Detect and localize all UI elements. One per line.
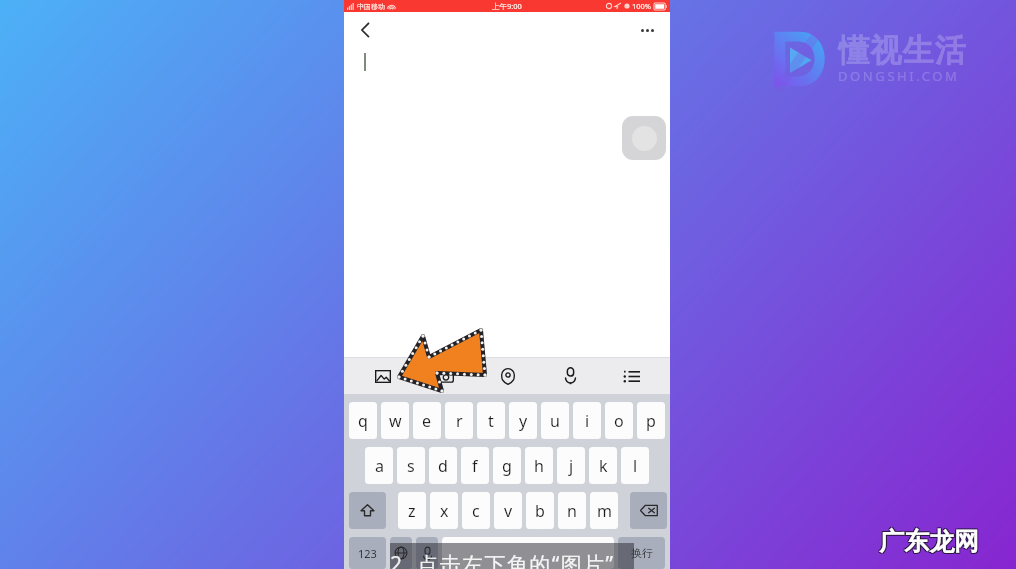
staticText: f — [472, 455, 478, 477]
button[interactable]: j — [557, 447, 585, 484]
staticText: u — [550, 410, 560, 432]
staticText: l — [633, 455, 638, 477]
button[interactable]: v — [494, 492, 522, 529]
staticText: 上午9:00 — [492, 1, 522, 11]
staticText: a — [375, 455, 384, 477]
staticText: v — [504, 500, 513, 522]
button[interactable]: p — [637, 402, 665, 439]
button[interactable]: Back — [344, 12, 382, 48]
button[interactable]: 123 — [349, 537, 386, 569]
button[interactable]: i — [573, 402, 601, 439]
staticText: b — [535, 500, 545, 522]
staticText: o — [614, 410, 624, 432]
button[interactable]: 换行 — [618, 537, 665, 569]
staticText: 广东龙网 — [879, 525, 979, 556]
button[interactable]: Shift — [349, 492, 386, 529]
button[interactable]: t — [477, 402, 505, 439]
staticText: y — [519, 410, 528, 432]
button[interactable]: Dictation — [416, 537, 438, 569]
button[interactable]: x — [430, 492, 458, 529]
staticText: w — [389, 410, 402, 432]
staticText: e — [422, 410, 432, 432]
staticText: m — [597, 500, 612, 522]
staticText: p — [646, 410, 656, 432]
button[interactable]: g — [493, 447, 521, 484]
staticText: c — [472, 500, 480, 522]
button[interactable]: r — [445, 402, 473, 439]
staticText: 2. 点击左下角的“图片” — [390, 550, 615, 569]
button[interactable]: More options — [630, 12, 670, 48]
staticText: 广东龙网 — [879, 527, 979, 558]
staticText: 100% — [632, 1, 652, 11]
button[interactable]: f — [461, 447, 489, 484]
staticText: 广东龙网 — [878, 525, 978, 556]
staticText: z — [408, 500, 416, 522]
staticText: 广东龙网 — [880, 525, 980, 556]
staticText: x — [440, 500, 449, 522]
staticText: 懂视生活 — [838, 31, 966, 70]
staticText: s — [407, 455, 415, 477]
button[interactable]: l — [621, 447, 649, 484]
button[interactable]: y — [509, 402, 537, 439]
staticText: 广东龙网 — [878, 526, 978, 557]
staticText: n — [567, 500, 577, 522]
staticText: 广东龙网 — [879, 526, 979, 557]
button[interactable]: a — [365, 447, 393, 484]
staticText: j — [569, 455, 574, 477]
button[interactable]: o — [605, 402, 633, 439]
button[interactable]: u — [541, 402, 569, 439]
staticText: 广东龙网 — [880, 526, 980, 557]
button[interactable]: Location — [477, 358, 539, 394]
staticText: DONGSHI.COM — [838, 67, 960, 85]
button[interactable]: Voice input — [539, 358, 601, 394]
staticText: 广东龙网 — [880, 527, 980, 558]
button[interactable]: List — [601, 358, 663, 394]
staticText: i — [585, 410, 590, 432]
staticText: d — [438, 455, 448, 477]
staticText: 换行 — [631, 546, 653, 560]
staticText: g — [502, 455, 512, 477]
button[interactable]: Photo — [351, 358, 414, 394]
staticText: r — [456, 410, 463, 432]
staticText: 123 — [358, 546, 377, 561]
button[interactable]: m — [590, 492, 618, 529]
staticText: k — [599, 455, 608, 477]
button[interactable]: Camera — [414, 358, 477, 394]
staticText: 中国移动 — [357, 2, 385, 11]
button[interactable]: Backspace — [630, 492, 667, 529]
button[interactable]: Language — [390, 537, 412, 569]
button[interactable]: Assistive touch — [622, 116, 666, 160]
button[interactable]: e — [413, 402, 441, 439]
staticText: t — [488, 410, 494, 432]
staticText: q — [358, 410, 368, 432]
button[interactable]: Space — [442, 537, 614, 569]
button[interactable]: c — [462, 492, 490, 529]
button[interactable]: n — [558, 492, 586, 529]
button[interactable]: d — [429, 447, 457, 484]
button[interactable]: b — [526, 492, 554, 529]
button[interactable]: z — [398, 492, 426, 529]
button[interactable]: q — [349, 402, 377, 439]
button[interactable]: w — [381, 402, 409, 439]
button[interactable]: s — [397, 447, 425, 484]
button[interactable]: k — [589, 447, 617, 484]
staticText: 广东龙网 — [878, 527, 978, 558]
staticText: h — [534, 455, 544, 477]
button[interactable]: h — [525, 447, 553, 484]
